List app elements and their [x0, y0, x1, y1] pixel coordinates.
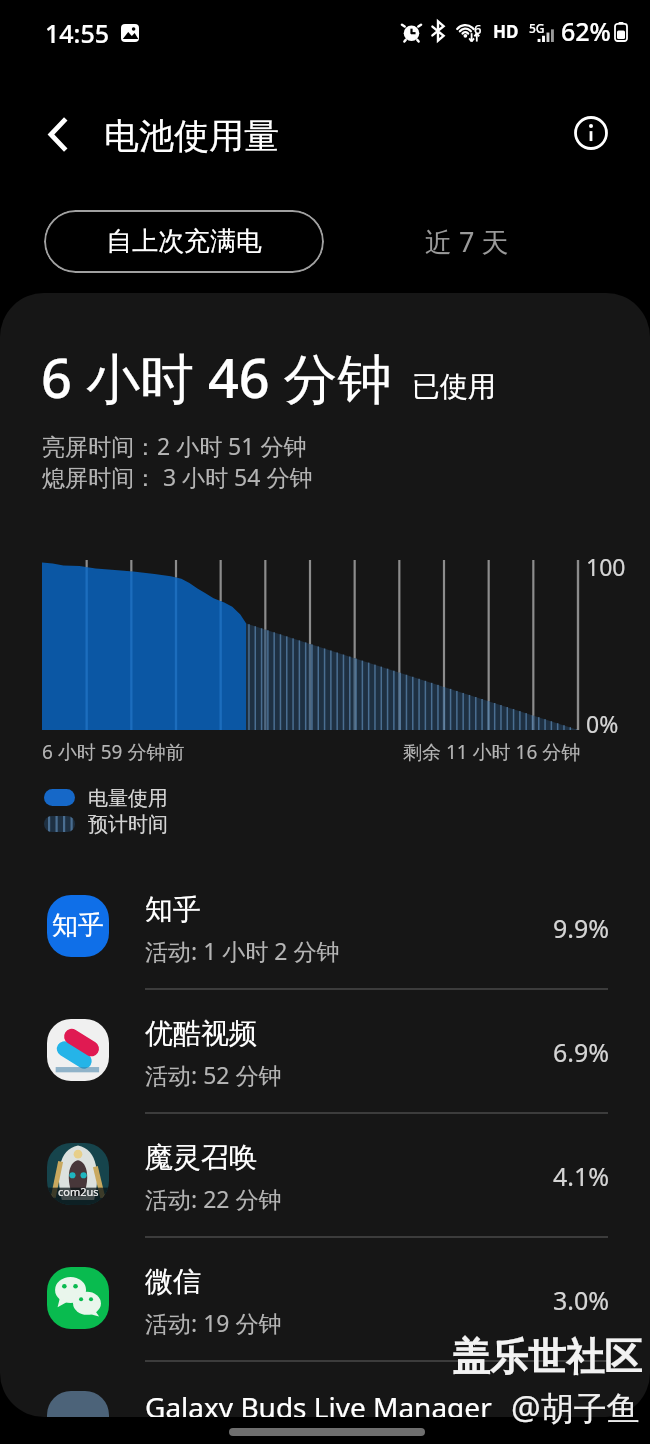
- staticText: 魔灵召唤: [145, 1140, 257, 1175]
- staticText: 9.9%: [553, 911, 610, 945]
- staticText: 100: [586, 551, 626, 582]
- staticText: 活动: 52 分钟: [145, 1059, 282, 1090]
- staticText: 活动: 19 分钟: [145, 1307, 282, 1338]
- staticText: Galaxy Buds Live Manager: [145, 1388, 492, 1417]
- staticText: 微信: [145, 1264, 201, 1299]
- staticText: @胡子鱼: [511, 1385, 640, 1430]
- staticText: 6: [474, 20, 482, 38]
- staticText: 亮屏时间：2 小时 51 分钟: [42, 430, 307, 461]
- staticText: 6.9%: [553, 1035, 610, 1069]
- staticText: 3.0%: [553, 1283, 610, 1317]
- staticText: 6 小时 46 分钟: [41, 340, 392, 414]
- button[interactable]: com2us: [0, 1115, 650, 1239]
- staticText: 活动: 1 小时 2 分钟: [145, 935, 340, 966]
- staticText: 知乎: [145, 892, 201, 927]
- staticText: 知乎: [52, 909, 104, 942]
- button[interactable]: Information: [567, 109, 615, 157]
- staticText: 剩余 11 小时 16 分钟: [403, 739, 581, 765]
- staticText: 熄屏时间： 3 小时 54 分钟: [42, 461, 313, 492]
- staticText: 自上次充满电: [106, 225, 262, 258]
- staticText: 已使用: [412, 369, 496, 404]
- staticText: 预计时间: [88, 812, 168, 837]
- button[interactable]: 知乎: [0, 867, 650, 991]
- staticText: 6 小时 59 分钟前: [42, 739, 185, 765]
- staticText: 电池使用量: [104, 114, 279, 158]
- staticText: 盖乐世社区: [452, 1333, 642, 1381]
- staticText: HD: [493, 20, 519, 43]
- button[interactable]: Back: [29, 106, 85, 162]
- staticText: 62%: [561, 14, 611, 48]
- staticText: 0%: [586, 708, 619, 739]
- staticText: 14:55: [45, 16, 110, 50]
- staticText: com2us: [58, 1184, 99, 1199]
- button[interactable]: 近 7 天: [367, 210, 567, 273]
- staticText: 近 7 天: [425, 223, 509, 260]
- button[interactable]: Galaxy Buds Live Manager: [0, 1363, 650, 1417]
- staticText: 5G: [529, 20, 545, 36]
- staticText: 活动: 22 分钟: [145, 1183, 282, 1214]
- staticText: 4.1%: [553, 1159, 610, 1193]
- staticText: 优酷视频: [145, 1016, 257, 1051]
- staticText: 电量使用: [88, 786, 168, 811]
- button[interactable]: 优酷视频: [0, 991, 650, 1115]
- button[interactable]: 自上次充满电: [44, 210, 324, 273]
- button[interactable]: 微信: [0, 1239, 650, 1363]
